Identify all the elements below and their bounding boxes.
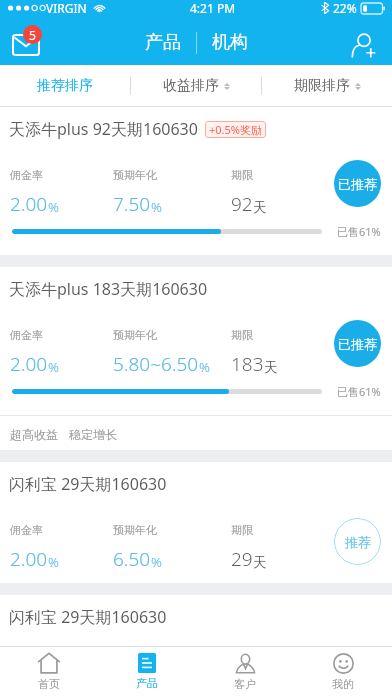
staticText: 推荐排序 (37, 77, 93, 95)
staticText: 期限 (231, 328, 253, 342)
button[interactable]: 闪利宝 29天期160630 (0, 462, 392, 583)
button[interactable]: 推荐排序 (0, 65, 130, 106)
staticText: 2.00 (10, 191, 48, 217)
staticText: 已推荐 (338, 176, 377, 192)
button[interactable]: 我的 (294, 647, 392, 696)
staticText: 6.50 (113, 546, 151, 572)
staticText: % (48, 358, 59, 376)
button[interactable]: 推荐 (334, 518, 381, 565)
button[interactable]: 客户 (196, 647, 294, 696)
staticText: 稳定增长 (69, 427, 117, 442)
button[interactable]: 已推荐 (334, 320, 381, 367)
staticText: % (151, 198, 162, 216)
staticText: 佣金率 (10, 328, 43, 342)
button[interactable]: 首页 (0, 647, 98, 696)
staticText: 天添牛plus 183天期160630 (9, 278, 208, 300)
staticText: 期限排序 (294, 77, 350, 95)
staticText: 闪利宝 29天期160630 (9, 473, 167, 495)
button[interactable]: 收益排序 (131, 65, 261, 106)
button[interactable]: Add contact (342, 23, 384, 65)
staticText: 收益排序 (163, 77, 219, 95)
staticText: 首页 (38, 677, 60, 691)
staticText: 我的 (332, 677, 354, 691)
staticText: 天添牛plus 92天期160630 (9, 118, 198, 140)
staticText: VIRGIN (46, 0, 87, 16)
staticText: 客户 (234, 677, 256, 691)
button[interactable]: 产品 (145, 31, 181, 54)
button[interactable]: 天添牛plus 183天期160630 (0, 267, 392, 450)
staticText: 183 (231, 351, 264, 377)
staticText: % (48, 198, 59, 216)
staticText: 2.00 (10, 546, 48, 572)
button[interactable]: Messages (6, 22, 50, 65)
staticText: 天 (264, 359, 278, 376)
button[interactable]: 机构 (212, 31, 248, 54)
staticText: % (48, 553, 59, 571)
button[interactable]: 闪利宝 29天期160630 (0, 595, 392, 646)
staticText: % (199, 358, 210, 376)
staticText: 92 (231, 191, 253, 217)
staticText: 5 (29, 27, 36, 43)
staticText: 已售61% (337, 224, 381, 239)
staticText: 已推荐 (338, 336, 377, 352)
staticText: 超高收益 (10, 427, 58, 442)
button[interactable]: 已推荐 (334, 160, 381, 207)
staticText: 闪利宝 29天期160630 (9, 606, 167, 628)
staticText: 22% (333, 0, 357, 16)
staticText: 推荐 (345, 534, 371, 550)
staticText: 天 (253, 554, 267, 571)
staticText: 产品 (136, 676, 158, 690)
button[interactable]: 天添牛plus 92天期160630 (0, 107, 392, 255)
staticText: 期限 (231, 523, 253, 537)
staticText: 预期年化 (113, 328, 157, 342)
staticText: 4:21 PM (190, 0, 236, 16)
button[interactable]: 期限排序 (262, 65, 392, 106)
staticText: 29 (231, 546, 253, 572)
staticText: 期限 (231, 168, 253, 182)
staticText: +0.5%奖励 (209, 122, 262, 137)
staticText: % (151, 553, 162, 571)
button[interactable]: 产品 (98, 647, 196, 696)
staticText: 天 (253, 199, 267, 216)
staticText: 已售61% (337, 384, 381, 399)
staticText: 5.80~6.50 (113, 351, 199, 377)
staticText: 预期年化 (113, 168, 157, 182)
staticText: 佣金率 (10, 523, 43, 537)
staticText: 7.50 (113, 191, 151, 217)
staticText: 2.00 (10, 351, 48, 377)
staticText: 佣金率 (10, 168, 43, 182)
staticText: 预期年化 (113, 523, 157, 537)
